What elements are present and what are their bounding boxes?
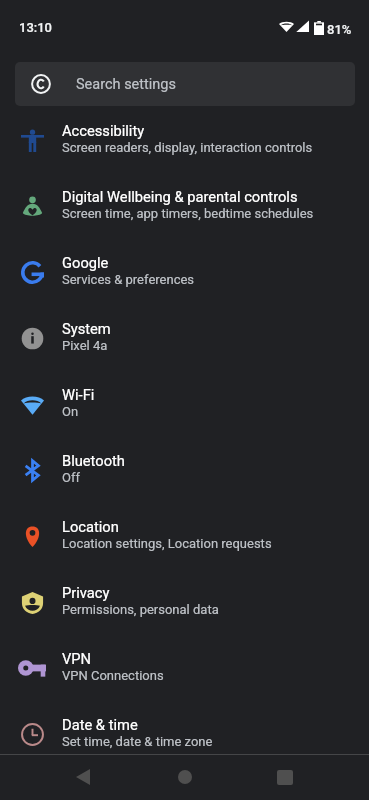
staticText: Date & time — [62, 716, 138, 733]
staticText: Privacy — [62, 584, 110, 601]
button[interactable]: Home — [162, 758, 208, 796]
button[interactable]: Search settings — [15, 62, 355, 106]
button[interactable]: Back — [60, 758, 106, 796]
button[interactable]: System — [0, 306, 369, 372]
button[interactable]: Digital Wellbeing & parental controls — [0, 174, 369, 240]
staticText: 13:10 — [19, 20, 52, 35]
staticText: Accessibility — [62, 122, 145, 139]
staticText: Location — [62, 518, 119, 535]
button[interactable]: Bluetooth — [0, 438, 369, 504]
staticText: Search settings — [76, 76, 176, 93]
staticText: Google — [62, 254, 109, 271]
staticText: Wi-Fi — [62, 386, 95, 403]
button[interactable]: Location — [0, 504, 369, 570]
button[interactable]: Privacy — [0, 570, 369, 636]
staticText: Screen time, app timers, bedtime schedul… — [62, 206, 314, 221]
staticText: On — [62, 404, 79, 419]
button[interactable]: VPN — [0, 636, 369, 702]
staticText: Digital Wellbeing & parental controls — [62, 188, 298, 205]
staticText: Pixel 4a — [62, 338, 108, 353]
button[interactable]: Date & time — [0, 702, 369, 768]
staticText: Set time, date & time zone — [62, 734, 213, 749]
button[interactable]: Recent apps — [262, 758, 308, 796]
button[interactable]: Google — [0, 240, 369, 306]
staticText: System — [62, 320, 111, 337]
staticText: VPN Connections — [62, 668, 164, 683]
staticText: Permissions, personal data — [62, 602, 219, 617]
staticText: 81% — [327, 22, 352, 37]
staticText: VPN — [62, 650, 92, 667]
staticText: Screen readers, display, interaction con… — [62, 140, 313, 155]
staticText: Services & preferences — [62, 272, 195, 287]
staticText: Off — [62, 470, 80, 485]
staticText: Bluetooth — [62, 452, 125, 469]
staticText: Location settings, Location requests — [62, 536, 272, 551]
button[interactable]: Accessibility — [0, 108, 369, 174]
button[interactable]: Wi-Fi — [0, 372, 369, 438]
